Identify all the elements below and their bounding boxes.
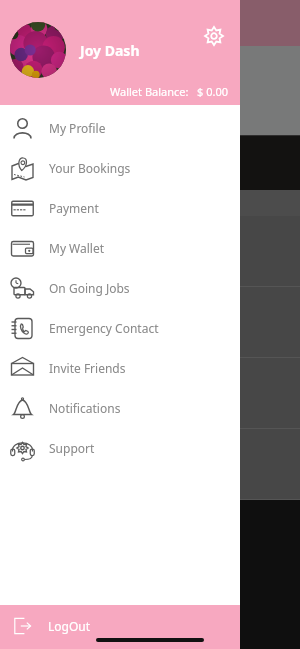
staticText: Payment (49, 200, 99, 216)
button[interactable]: Settings (204, 26, 224, 46)
button[interactable]: Emergency Contact (0, 308, 240, 348)
button[interactable]: Joy Dash (10, 22, 140, 78)
staticText: Wallet Balance: (110, 84, 189, 99)
staticText: On Going Jobs (49, 280, 130, 296)
staticText: Notifications (49, 400, 121, 416)
staticText: Emergency Contact (49, 320, 159, 336)
staticText: Your Bookings (49, 160, 131, 176)
staticText: Support (49, 440, 95, 456)
button[interactable]: Your Bookings (0, 148, 240, 188)
staticText: Joy Dash (80, 41, 140, 60)
staticText: Invite Friends (49, 360, 126, 376)
button[interactable]: My Profile (0, 108, 240, 148)
button[interactable]: Invite Friends (0, 348, 240, 388)
staticText: My Wallet (49, 240, 105, 256)
button[interactable]: Payment (0, 188, 240, 228)
button[interactable]: Support (0, 428, 240, 468)
button[interactable]: My Wallet (0, 228, 240, 268)
button[interactable]: On Going Jobs (0, 268, 240, 308)
staticText: $ 0.00 (197, 84, 228, 99)
staticText: LogOut (48, 618, 91, 634)
button[interactable]: LogOut (0, 605, 240, 649)
staticText: My Profile (49, 120, 106, 136)
button[interactable]: Notifications (0, 388, 240, 428)
